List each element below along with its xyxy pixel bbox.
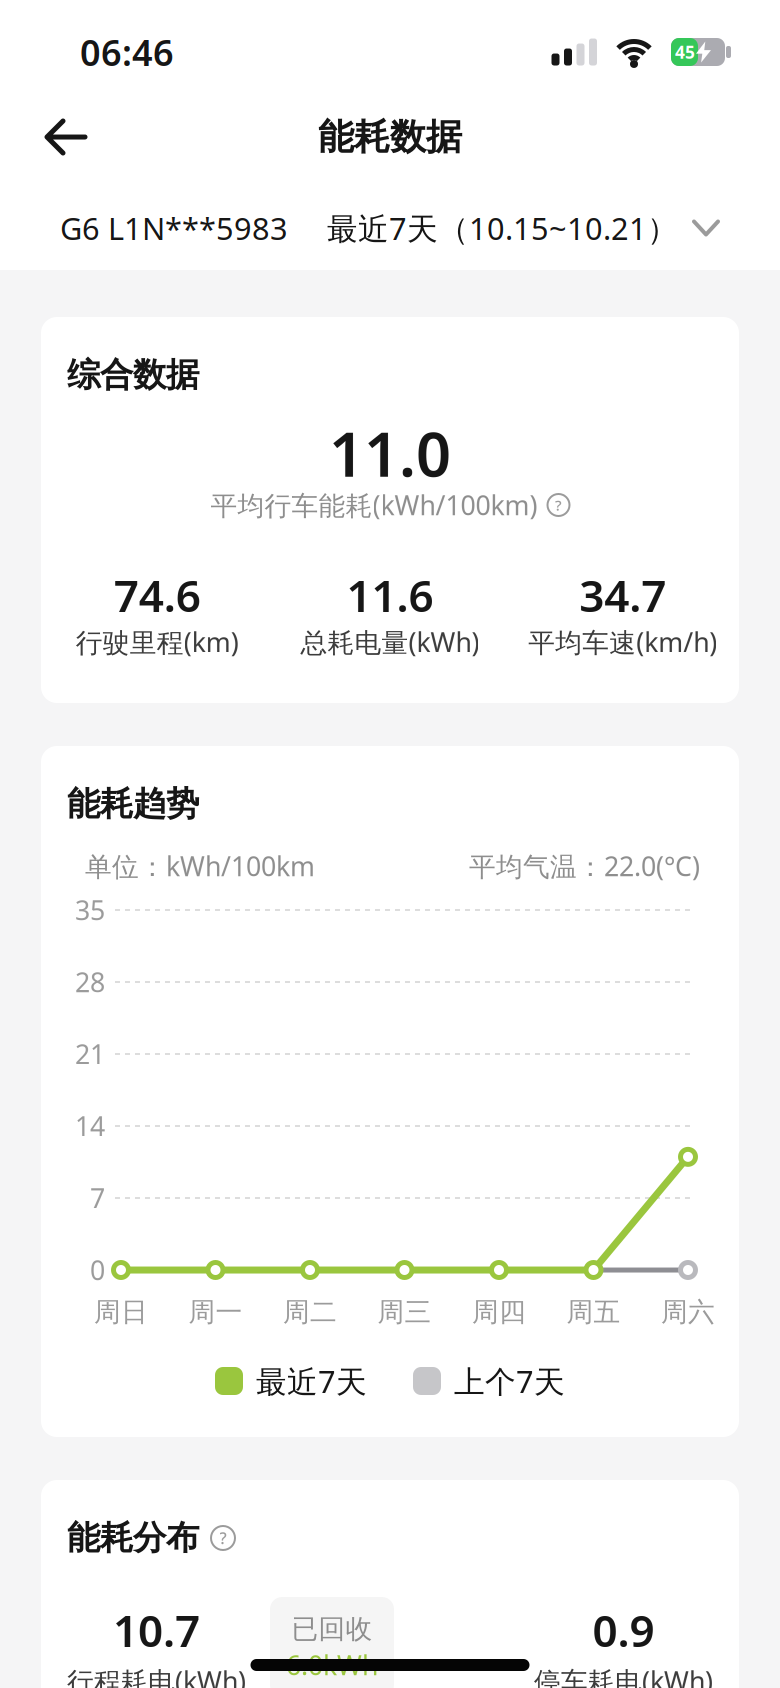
staticText: 34.7 <box>579 566 666 624</box>
staticText: 6.0kWh <box>286 1647 378 1683</box>
staticText: 行程耗电(kWh) <box>67 1663 246 1688</box>
staticText: 行驶里程(km) <box>76 624 239 660</box>
staticText: 平均车速(km/h) <box>528 624 717 660</box>
staticText: 平均行车能耗(kWh/100km) <box>210 487 537 523</box>
button[interactable]: 最近7天（10.15~10.21） <box>327 208 718 248</box>
staticText: 周三 <box>377 1296 431 1328</box>
staticText: 上个7天 <box>454 1361 565 1401</box>
staticText: 周六 <box>661 1296 715 1328</box>
staticText: 单位：kWh/100km <box>85 848 315 884</box>
staticText: 能耗数据 <box>318 115 462 159</box>
staticText: 最近7天 <box>256 1361 367 1401</box>
staticText: 周四 <box>472 1296 526 1328</box>
button[interactable]: 返回 <box>0 117 105 157</box>
staticText: G6 L1N***5983 <box>60 208 288 248</box>
staticText: 平均气温：22.0(°C) <box>469 848 700 884</box>
staticText: 周二 <box>283 1296 337 1328</box>
staticText: 0.9 <box>592 1601 654 1659</box>
staticText: 最近7天（10.15~10.21） <box>327 208 678 248</box>
staticText: 综合数据 <box>67 354 199 395</box>
staticText: 21 <box>75 1036 105 1072</box>
staticText: 停车耗电(kWh) <box>534 1663 713 1688</box>
staticText: 周日 <box>94 1296 148 1328</box>
staticText: 74.6 <box>114 566 201 624</box>
staticText: ? <box>219 1527 226 1549</box>
staticText: 7 <box>90 1180 105 1216</box>
staticText: 11.6 <box>346 566 433 624</box>
staticText: 28 <box>75 964 105 1000</box>
staticText: 06:46 <box>80 28 174 76</box>
staticText: 周一 <box>188 1296 242 1328</box>
staticText: 14 <box>75 1108 105 1144</box>
staticText: 11.0 <box>329 412 451 494</box>
staticText: 能耗分布 <box>67 1517 199 1558</box>
staticText: 周五 <box>566 1296 620 1328</box>
staticText: 10.7 <box>113 1601 200 1659</box>
staticText: 45 <box>675 40 695 63</box>
button[interactable]: 帮助 <box>547 494 569 516</box>
staticText: 35 <box>75 892 105 928</box>
staticText: 能耗趋势 <box>67 783 199 824</box>
staticText: ? <box>555 495 562 515</box>
button[interactable]: 帮助 <box>211 1526 235 1550</box>
staticText: 0 <box>90 1252 105 1288</box>
staticText: 已回收 <box>291 1613 372 1645</box>
staticText: 总耗电量(kWh) <box>300 624 479 660</box>
